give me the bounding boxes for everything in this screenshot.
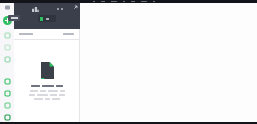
button[interactable]: Tasks xyxy=(3,55,11,63)
button[interactable]: Activity xyxy=(3,31,11,39)
button[interactable]: Storage xyxy=(3,113,11,121)
button[interactable]: Reports xyxy=(3,101,11,109)
button[interactable] xyxy=(14,29,80,39)
button[interactable]: View options xyxy=(32,7,39,12)
button[interactable]: More options xyxy=(56,8,64,10)
button[interactable]: Expand xyxy=(72,5,78,11)
button[interactable]: Create new xyxy=(2,15,12,25)
button[interactable]: App menu xyxy=(4,4,11,11)
button[interactable]: No documents xyxy=(41,62,54,79)
button[interactable]: Add item xyxy=(3,77,11,85)
button[interactable]: Projects xyxy=(3,89,11,97)
button[interactable]: Messages xyxy=(3,43,11,51)
button[interactable] xyxy=(38,15,56,22)
